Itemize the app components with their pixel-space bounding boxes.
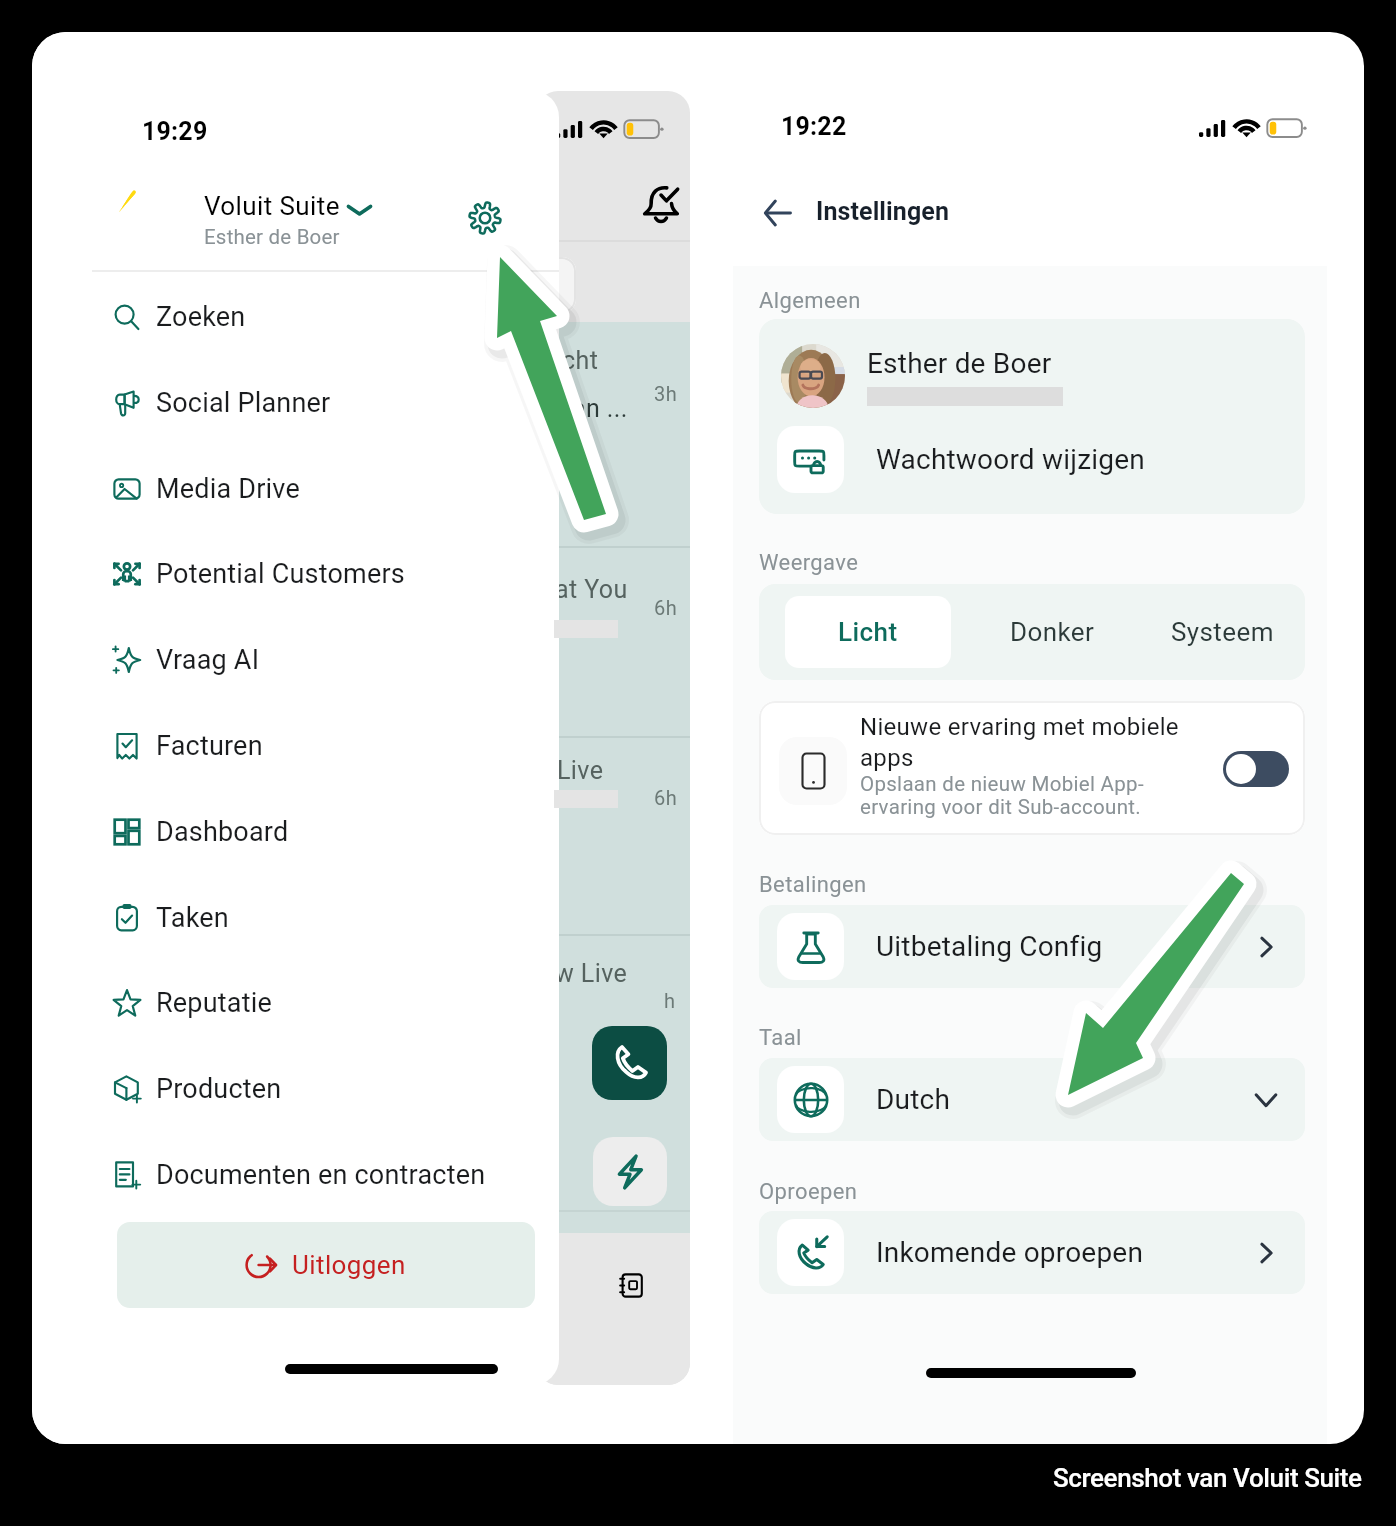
staticText: Potential Customers bbox=[156, 558, 405, 590]
staticText: Taal bbox=[759, 1025, 802, 1051]
staticText: an ... bbox=[572, 394, 628, 423]
staticText: Opslaan de nieuw Mobiel App-ervaring voo… bbox=[860, 772, 1196, 819]
staticText: Media Drive bbox=[156, 473, 300, 505]
staticText: Facturen bbox=[156, 730, 263, 762]
button[interactable]: Media Drive bbox=[112, 447, 562, 531]
staticText: h bbox=[664, 989, 676, 1012]
button[interactable]: Reputatie bbox=[112, 961, 562, 1045]
button[interactable]: Donker bbox=[969, 596, 1135, 668]
button[interactable]: Schakelaar bbox=[1223, 751, 1289, 787]
button[interactable]: Meldingen bbox=[632, 177, 690, 233]
staticText: Inkomende oproepen bbox=[876, 1236, 1253, 1269]
staticText: Wachtwoord wijzigen bbox=[876, 443, 1145, 476]
button[interactable]: Uitloggen bbox=[117, 1222, 535, 1308]
staticText: w Live bbox=[555, 959, 628, 988]
button[interactable]: Zoeken bbox=[112, 275, 562, 359]
staticText: 3h bbox=[654, 382, 678, 405]
staticText: at You bbox=[555, 575, 628, 604]
staticText: Dutch bbox=[876, 1083, 1253, 1116]
staticText: Algemeen bbox=[759, 288, 861, 314]
staticText: Taken bbox=[156, 902, 229, 934]
staticText: Voluit Suite bbox=[204, 191, 340, 221]
button[interactable]: Licht bbox=[785, 596, 951, 668]
staticText: Instellingen bbox=[816, 197, 950, 226]
staticText: Systeem bbox=[1171, 617, 1274, 647]
button[interactable]: Potential Customers bbox=[112, 532, 562, 616]
staticText: Uitloggen bbox=[292, 1250, 406, 1280]
button[interactable]: Bellen bbox=[592, 1026, 667, 1100]
staticText: Uitbetaling Config bbox=[876, 930, 1253, 963]
staticText: Screenshot van Voluit Suite bbox=[1053, 1463, 1362, 1493]
button[interactable]: Inkomende oproepen bbox=[759, 1211, 1305, 1294]
button[interactable]: Taken bbox=[112, 876, 562, 960]
staticText: 6h bbox=[654, 786, 678, 809]
staticText: Betalingen bbox=[759, 872, 867, 898]
staticText: Vraag AI bbox=[156, 644, 260, 676]
button[interactable]: Dashboard bbox=[112, 790, 562, 874]
staticText: Esther de Boer bbox=[867, 347, 1052, 380]
staticText: Weergave bbox=[759, 550, 859, 576]
staticText: Esther de Boer bbox=[204, 225, 340, 249]
button[interactable]: Uitbetaling Config bbox=[759, 905, 1305, 988]
staticText: 19:22 bbox=[781, 112, 847, 141]
staticText: Documenten en contracten bbox=[156, 1159, 486, 1191]
staticText: Zoeken bbox=[156, 301, 246, 333]
button[interactable]: Voluit Suite bbox=[197, 182, 387, 250]
button[interactable]: Systeem bbox=[1139, 596, 1305, 668]
staticText: Producten bbox=[156, 1073, 282, 1105]
staticText: Licht bbox=[838, 617, 898, 647]
staticText: 6h bbox=[654, 596, 678, 619]
button[interactable]: Instellingen bbox=[453, 186, 517, 250]
staticText: Dashboard bbox=[156, 816, 289, 848]
staticText: 19:29 bbox=[142, 117, 208, 146]
button[interactable]: Notities bbox=[604, 1258, 658, 1312]
button[interactable]: Social Planner bbox=[112, 361, 562, 445]
button[interactable]: Terug bbox=[741, 177, 813, 249]
button[interactable]: Vraag AI bbox=[112, 618, 562, 702]
staticText: Social Planner bbox=[156, 387, 331, 419]
button[interactable]: Acties bbox=[593, 1137, 667, 1206]
button[interactable]: Facturen bbox=[112, 704, 562, 788]
staticText: Reputatie bbox=[156, 987, 273, 1019]
button[interactable]: Producten bbox=[112, 1047, 562, 1131]
staticText: Live bbox=[557, 756, 604, 785]
button[interactable]: Dutch bbox=[759, 1058, 1305, 1141]
staticText: Nieuwe ervaring met mobiele apps bbox=[860, 713, 1196, 772]
staticText: Donker bbox=[1010, 617, 1095, 647]
button[interactable]: Wachtwoord wijzigen bbox=[777, 426, 1277, 493]
button[interactable]: Documenten en contracten bbox=[112, 1133, 562, 1217]
staticText: cht bbox=[562, 346, 599, 375]
staticText: Oproepen bbox=[759, 1179, 858, 1205]
